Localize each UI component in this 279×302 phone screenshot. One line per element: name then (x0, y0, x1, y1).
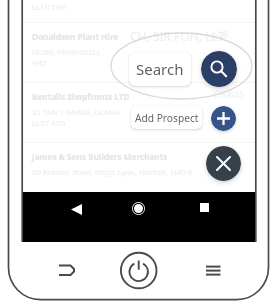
button[interactable]: Recent apps (198, 201, 210, 213)
button[interactable]: Search (129, 52, 191, 86)
button[interactable]: Search (201, 51, 237, 87)
button[interactable]: Bentalls Shopfronts LTD (23, 83, 255, 142)
staticText: Bentalls Shopfronts LTD (32, 91, 130, 102)
button[interactable]: Home (131, 201, 146, 216)
button[interactable]: Back (69, 202, 83, 216)
button[interactable]: Add Prospect (211, 106, 236, 131)
staticText: CH, SIR FON, LL7 (130, 28, 225, 44)
staticText: 21 TAN Y GRAIG, GLANA (32, 107, 120, 118)
staticText: LL57 4SD (32, 118, 66, 129)
staticText: James & Sons Builders Merchants (32, 151, 168, 162)
staticText: 648 (213, 28, 229, 40)
staticText: Search (136, 59, 184, 79)
button[interactable]: Donaldson Plant Hire (23, 23, 255, 82)
button[interactable]: Close menu (206, 146, 241, 181)
staticText: Donaldson Plant Hire (32, 31, 119, 42)
staticText: C00645 (213, 88, 245, 100)
staticText: LL19 7BH (32, 2, 67, 13)
staticText: 80 Kramer Road, Kings Lynn, Norfolk, N40… (32, 167, 192, 178)
button[interactable]: James & Sons Builders Merchants (23, 143, 255, 202)
staticText: Add Prospect (135, 111, 199, 125)
button[interactable]: Add Prospect (131, 106, 202, 129)
staticText: FEDW, PENRHOSLL (32, 47, 102, 58)
staticText: 9HZ (32, 58, 47, 69)
